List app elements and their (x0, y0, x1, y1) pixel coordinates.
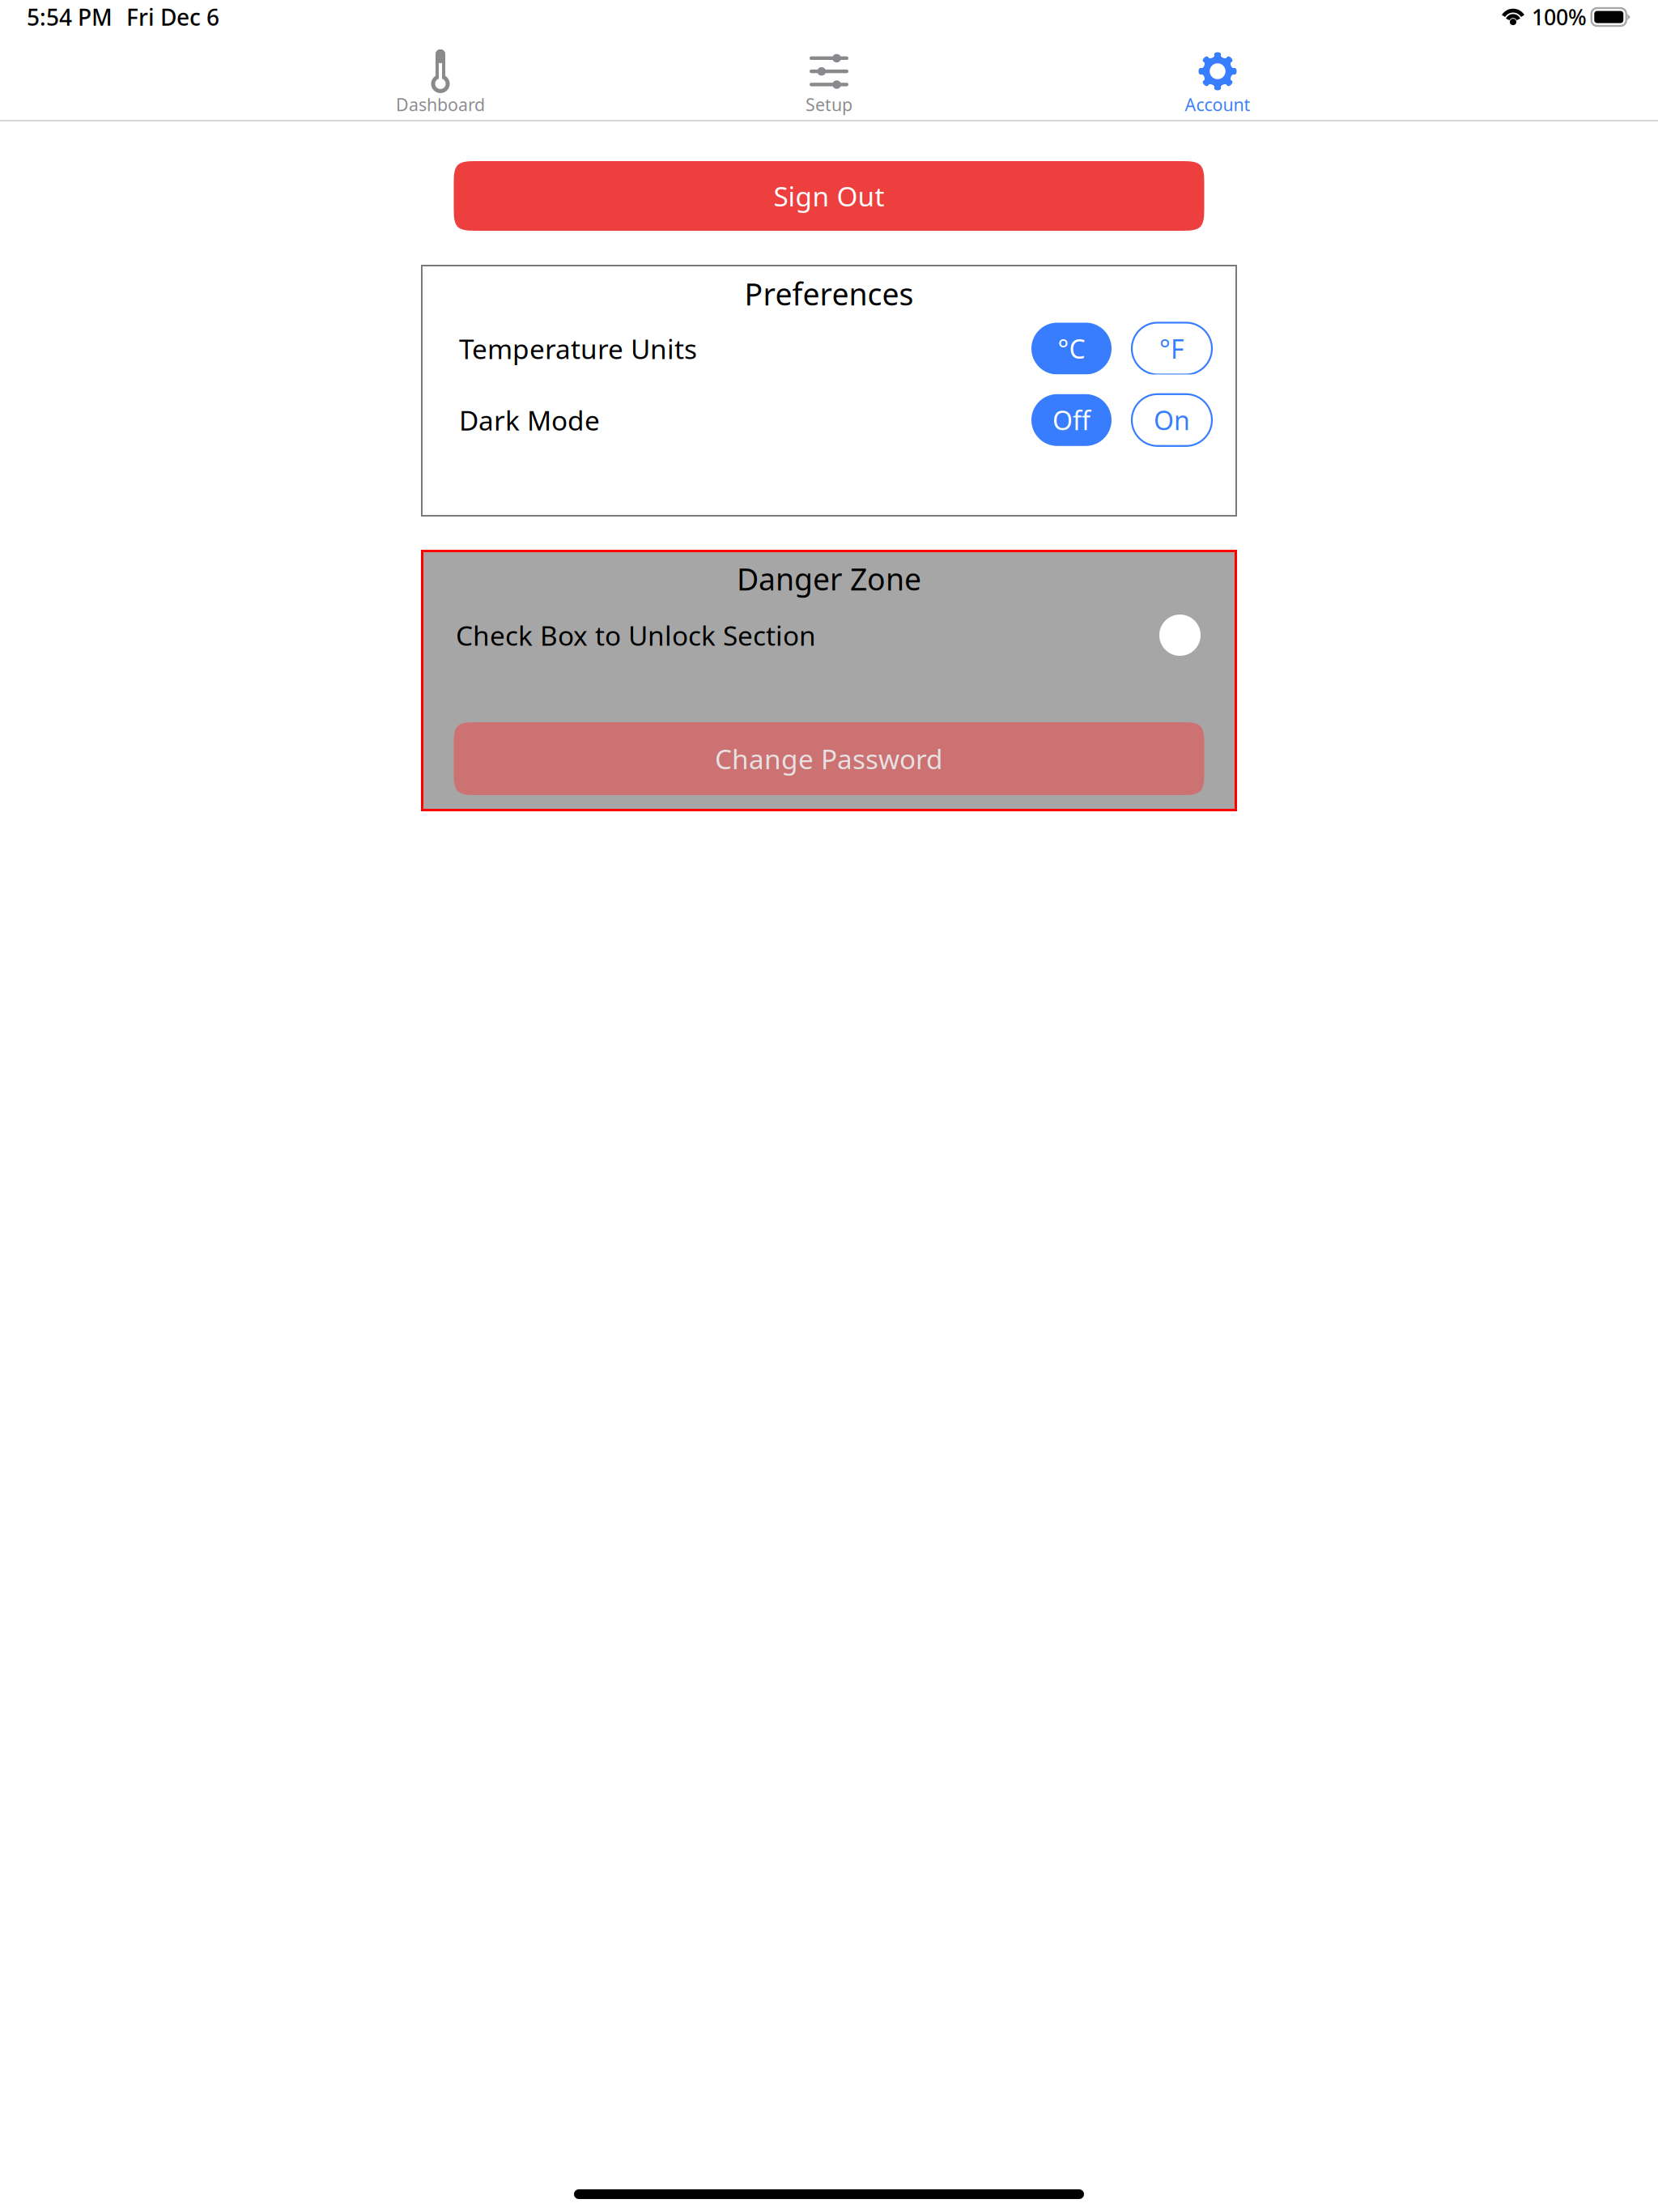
staticText: Check Box to Unlock Section (456, 617, 816, 653)
button[interactable]: °F (1132, 323, 1212, 374)
staticText: 5:54 PM (27, 2, 113, 32)
staticText: Setup (806, 93, 852, 116)
staticText: Temperature Units (459, 331, 697, 367)
button[interactable]: Change Password (454, 722, 1204, 795)
staticText: Danger Zone (737, 559, 921, 599)
button[interactable]: Off (1031, 394, 1112, 446)
button[interactable]: On (1132, 394, 1212, 446)
staticText: Fri Dec 6 (126, 2, 219, 32)
staticText: Off (1052, 403, 1090, 437)
button[interactable]: Sign Out (454, 161, 1204, 231)
button[interactable]: Setup (659, 34, 999, 120)
button[interactable]: Unlock section (1159, 615, 1201, 656)
staticText: Sign Out (774, 178, 884, 214)
staticText: Change Password (715, 741, 943, 777)
staticText: Account (1185, 93, 1250, 116)
staticText: °F (1159, 331, 1184, 366)
staticText: Dark Mode (459, 402, 600, 438)
staticText: °C (1058, 331, 1085, 366)
button[interactable]: °C (1031, 323, 1112, 374)
button[interactable]: Dashboard (270, 34, 610, 120)
staticText: Preferences (744, 274, 914, 314)
staticText: On (1154, 403, 1190, 437)
staticText: 100% (1532, 3, 1587, 31)
button[interactable]: Account (1048, 34, 1388, 120)
staticText: Dashboard (396, 93, 485, 116)
